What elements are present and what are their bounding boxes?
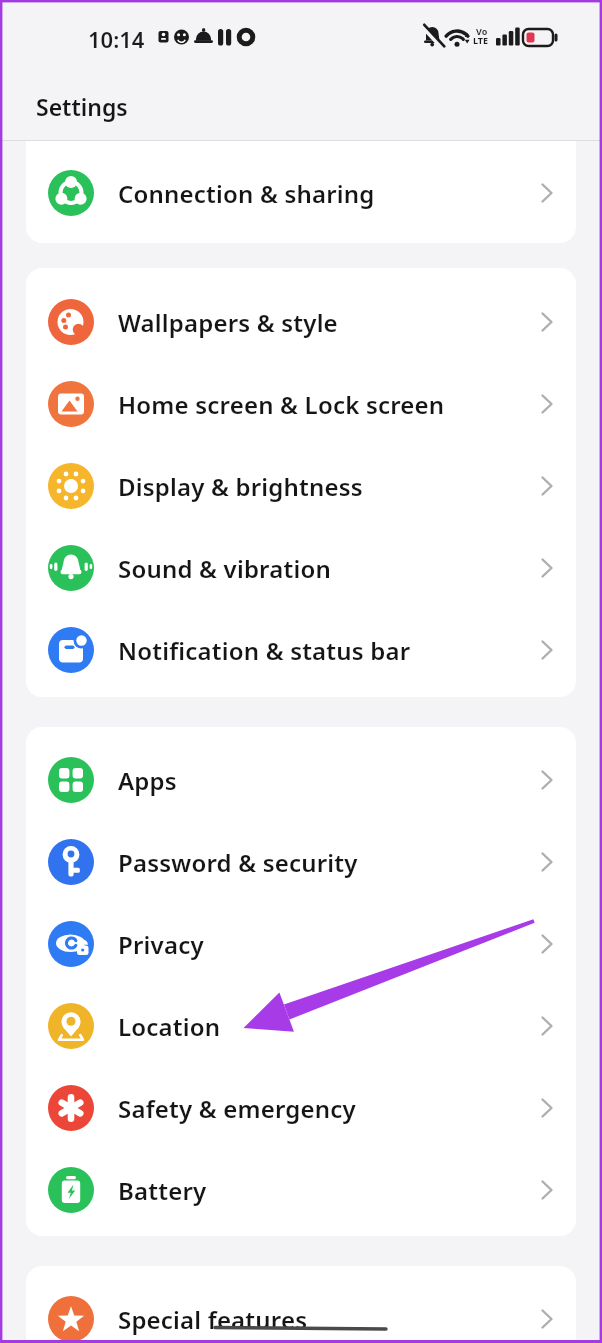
button[interactable]: Password & security — [26, 821, 576, 903]
staticText: Safety & emergency — [118, 1092, 356, 1125]
button[interactable]: Home screen & Lock screen — [26, 363, 576, 445]
staticText: Home screen & Lock screen — [118, 388, 445, 421]
button[interactable]: Connection & sharing — [26, 152, 576, 234]
staticText: Sound & vibration — [118, 552, 331, 585]
button[interactable]: Wallpapers & style — [26, 281, 576, 363]
button[interactable]: Sound & vibration — [26, 527, 576, 609]
staticText: Vo — [476, 25, 488, 37]
button[interactable]: Notification & status bar — [26, 609, 576, 691]
button[interactable]: Safety & emergency — [26, 1067, 576, 1149]
staticText: Privacy — [118, 928, 204, 961]
button[interactable]: Special features — [26, 1278, 576, 1343]
staticText: Display & brightness — [118, 470, 363, 503]
staticText: Location — [118, 1010, 221, 1043]
staticText: Connection & sharing — [118, 177, 375, 210]
staticText: Password & security — [118, 846, 358, 879]
button[interactable]: Location — [26, 985, 576, 1067]
button[interactable]: Privacy — [26, 903, 576, 985]
staticText: Wallpapers & style — [118, 306, 338, 339]
button[interactable]: Display & brightness — [26, 445, 576, 527]
staticText: 10:14 — [88, 24, 145, 54]
staticText: LTE — [473, 34, 489, 46]
staticText: Settings — [36, 91, 128, 122]
button[interactable]: Battery — [26, 1149, 576, 1231]
staticText: Battery — [118, 1174, 207, 1207]
staticText: Apps — [118, 764, 177, 797]
staticText: Notification & status bar — [118, 634, 411, 667]
button[interactable]: Apps — [26, 739, 576, 821]
staticText: Special features — [118, 1303, 308, 1336]
